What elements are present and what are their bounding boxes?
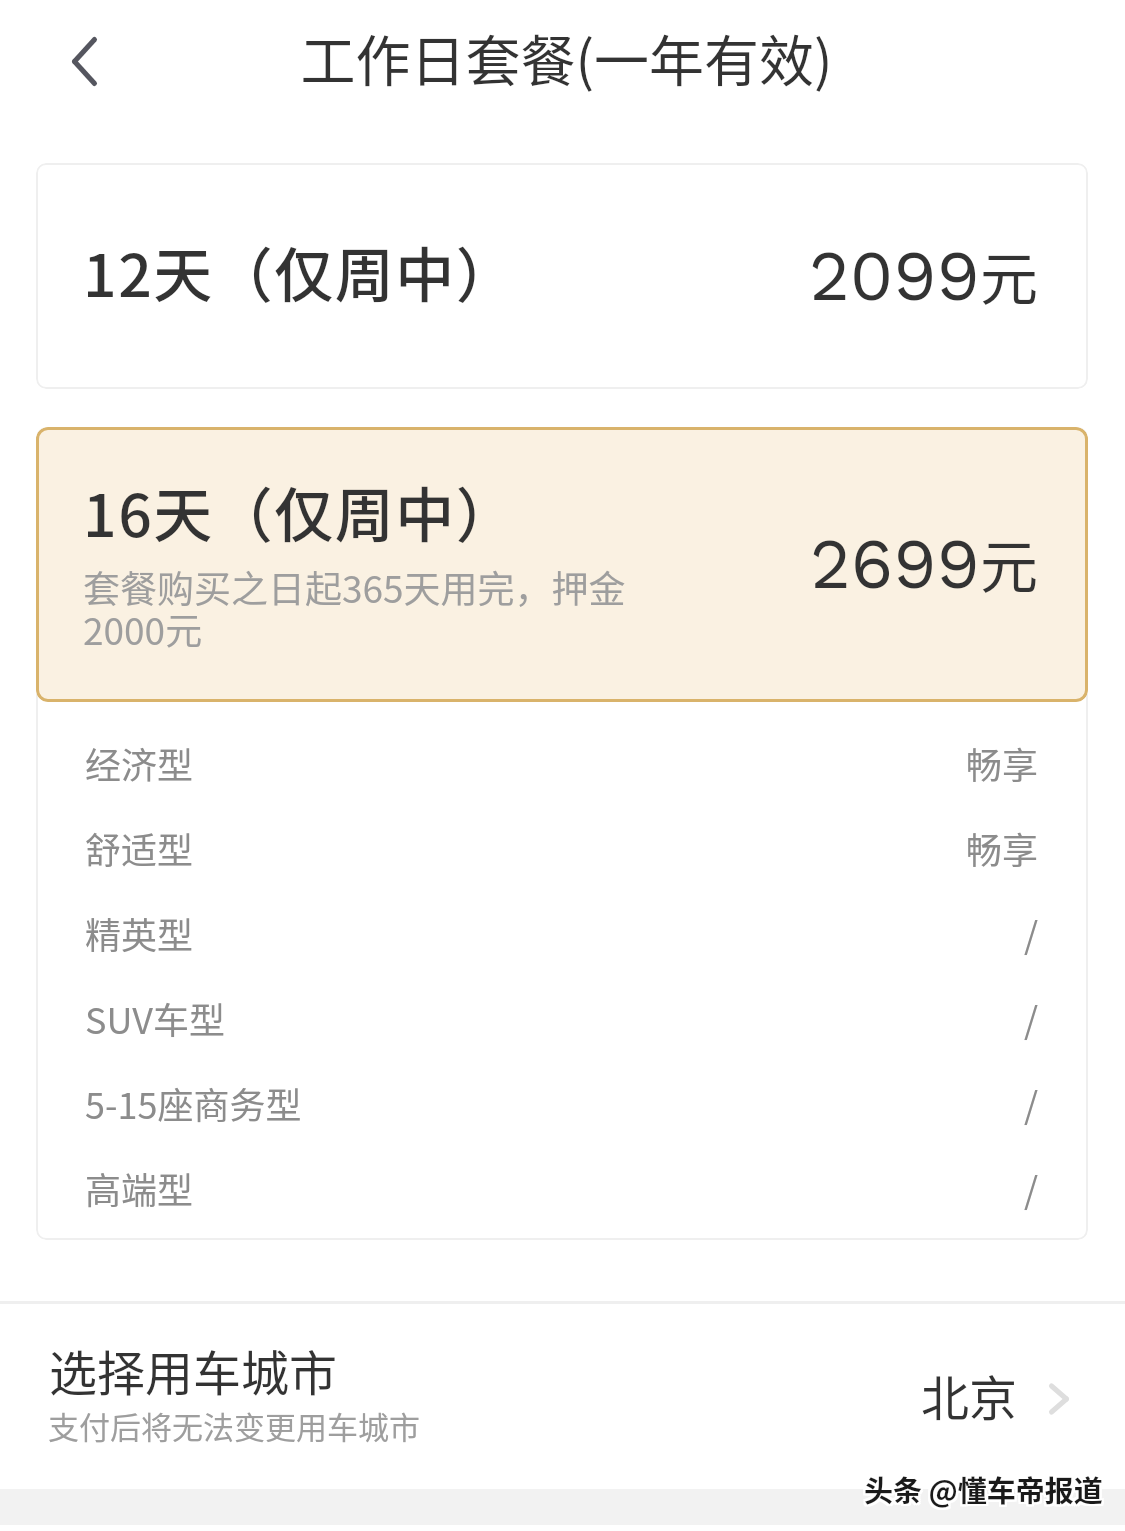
button[interactable]: 12天（仅周中） [36, 163, 1088, 389]
staticText: 头条 @懂车帝报道 [862, 1468, 1101, 1510]
staticText: 头条 @懂车帝报道 [866, 1468, 1105, 1510]
staticText: / [1024, 992, 1039, 1044]
staticText: / [1024, 1162, 1039, 1214]
staticText: 经济型 [85, 737, 194, 789]
staticText: 元 [980, 233, 1039, 317]
button[interactable]: 舒适型 [85, 805, 1039, 890]
staticText: 头条 @懂车帝报道 [866, 1470, 1105, 1512]
button[interactable]: Back [40, 27, 108, 95]
button[interactable]: 高端型 [85, 1145, 1039, 1230]
button[interactable]: 精英型 [85, 890, 1039, 975]
staticText: 2699 [810, 523, 980, 605]
staticText: 5-15座商务型 [85, 1077, 302, 1129]
staticText: 选择用车城市 [49, 1335, 338, 1405]
staticText: 北京 [921, 1360, 1018, 1430]
button[interactable]: 5-15座商务型 [85, 1060, 1039, 1145]
button[interactable]: 经济型 [85, 720, 1039, 805]
staticText: 畅享 [966, 737, 1039, 789]
staticText: 高端型 [85, 1162, 194, 1214]
button[interactable]: SUV车型 [85, 975, 1039, 1060]
staticText: 2099 [809, 235, 980, 317]
staticText: 16天（仅周中） [83, 469, 517, 554]
staticText: 头条 @懂车帝报道 [862, 1470, 1101, 1512]
staticText: 套餐购买之日起365天用完，押金2000元 [83, 560, 643, 655]
staticText: 畅享 [966, 822, 1039, 874]
staticText: / [1024, 907, 1039, 959]
staticText: 头条 @懂车帝报道 [862, 1466, 1101, 1508]
button[interactable]: 选择用车城市 [0, 1304, 1125, 1479]
staticText: 12天（仅周中） [83, 229, 517, 314]
button[interactable]: 16天（仅周中） [36, 427, 1088, 702]
staticText: / [1024, 1077, 1039, 1129]
staticText: 支付后将无法变更用车城市 [48, 1403, 420, 1448]
staticText: 工作日套餐(一年有效) [4, 17, 1125, 97]
staticText: 精英型 [85, 907, 194, 959]
staticText: 元 [980, 521, 1039, 605]
staticText: 头条 @懂车帝报道 [864, 1468, 1103, 1510]
staticText: 头条 @懂车帝报道 [864, 1470, 1103, 1512]
staticText: 头条 @懂车帝报道 [866, 1466, 1105, 1508]
staticText: 舒适型 [85, 822, 194, 874]
staticText: 头条 @懂车帝报道 [864, 1466, 1103, 1508]
staticText: SUV车型 [85, 992, 225, 1044]
